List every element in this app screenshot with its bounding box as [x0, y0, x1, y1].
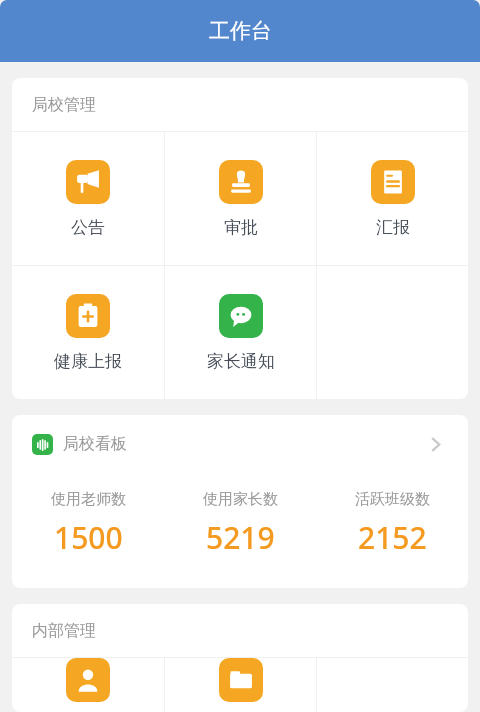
staticText: 工作台	[209, 18, 272, 44]
staticText: 汇报	[376, 217, 410, 238]
staticText: 2152	[358, 517, 427, 558]
staticText: 1500	[54, 517, 123, 558]
button[interactable]: 家长通知	[165, 266, 316, 399]
staticText: 使用家长数	[203, 490, 278, 509]
button[interactable]: 汇报	[317, 132, 468, 265]
staticText: 5219	[206, 517, 275, 558]
button[interactable]: 审批	[165, 132, 316, 265]
staticText: 使用老师数	[51, 490, 126, 509]
staticText: 健康上报	[54, 351, 122, 372]
button[interactable]: 公告	[12, 132, 164, 265]
staticText: 公告	[71, 217, 105, 238]
staticText: 局校看板	[63, 434, 127, 454]
button[interactable]: 健康上报	[12, 266, 164, 399]
staticText: 家长通知	[207, 351, 275, 372]
button[interactable]: 通讯录	[12, 658, 164, 712]
staticText: 审批	[224, 217, 258, 238]
staticText: 活跃班级数	[355, 490, 430, 509]
staticText: 局校管理	[32, 95, 96, 115]
button[interactable]: 局校看板	[12, 415, 468, 588]
button[interactable]: 资料	[165, 658, 316, 712]
other: 查看局校看板	[422, 431, 448, 457]
staticText: 内部管理	[32, 621, 96, 641]
